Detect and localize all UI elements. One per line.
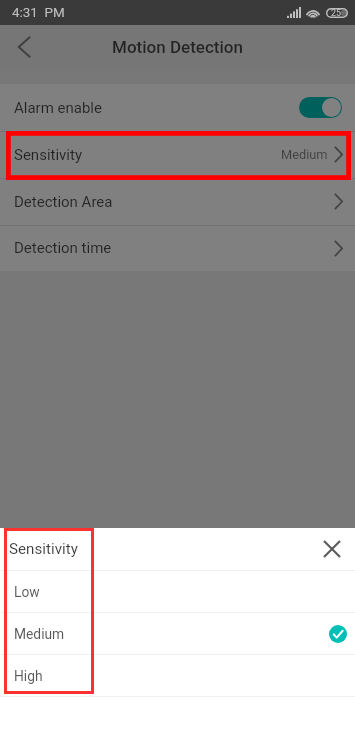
staticText: Motion Detection: [112, 37, 244, 57]
button[interactable]: Back: [0, 25, 48, 69]
staticText: Sensitivity: [14, 146, 83, 164]
button[interactable]: Medium: [0, 613, 355, 654]
button[interactable]: High: [0, 655, 355, 696]
staticText: Sensitivity: [9, 540, 78, 558]
staticText: Medium: [281, 147, 328, 162]
staticText: High: [14, 668, 43, 684]
button[interactable]: Sensitivity: [0, 131, 355, 178]
staticText: 25: [331, 8, 341, 18]
button[interactable]: Alarm enable: [0, 84, 355, 131]
button[interactable]: Detection time: [0, 225, 355, 271]
staticText: Alarm enable: [14, 99, 102, 117]
button[interactable]: Low: [0, 571, 355, 612]
staticText: Detection time: [14, 239, 112, 257]
button[interactable]: Detection Area: [0, 178, 355, 225]
staticText: Medium: [14, 626, 65, 642]
staticText: Detection Area: [14, 193, 113, 211]
staticText: Low: [14, 584, 40, 600]
staticText: 4:31 PM: [12, 5, 65, 21]
button[interactable]: Close: [316, 533, 348, 565]
button[interactable]: Alarm enable: [299, 97, 342, 118]
